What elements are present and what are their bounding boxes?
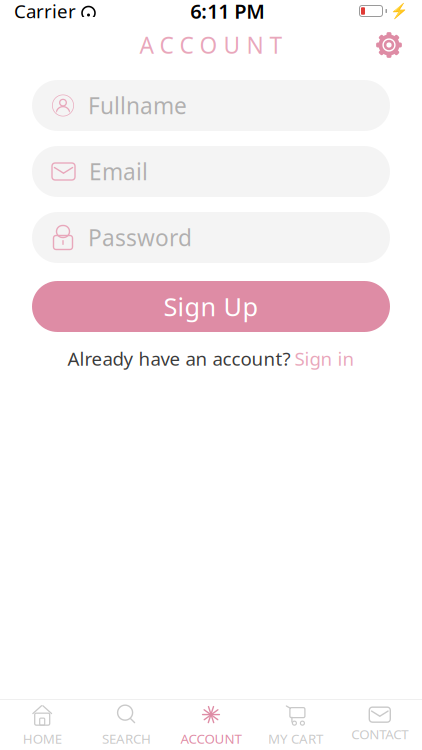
staticText: ACCOUNT: [180, 730, 241, 747]
button[interactable]: Email: [32, 146, 390, 197]
button[interactable]: CONTACT: [338, 701, 422, 749]
staticText: Sign in: [294, 346, 354, 371]
button[interactable]: Sign in: [294, 346, 354, 371]
staticText: Carrier: [14, 0, 76, 23]
button[interactable]: HOME: [0, 697, 84, 750]
button[interactable]: SEARCH: [84, 697, 169, 750]
staticText: 6:11 PM: [190, 0, 265, 24]
staticText: MY CART: [268, 730, 323, 747]
staticText: HOME: [23, 730, 62, 747]
button[interactable]: Sign Up: [32, 281, 390, 332]
staticText: CONTACT: [351, 725, 408, 743]
staticText: Already have an account?: [67, 346, 290, 371]
staticText: ⚡: [390, 3, 408, 19]
button[interactable]: ACCOUNT: [169, 697, 253, 750]
button[interactable]: Password: [32, 212, 390, 263]
staticText: SEARCH: [102, 730, 151, 747]
staticText: Password: [88, 222, 192, 252]
staticText: Sign Up: [163, 290, 258, 323]
button[interactable]: Fullname: [32, 80, 390, 131]
staticText: A C C O U N T: [139, 30, 282, 60]
button[interactable]: MY CART: [253, 697, 338, 750]
button[interactable]: Settings: [370, 26, 408, 64]
staticText: Fullname: [88, 90, 187, 120]
staticText: Email: [89, 156, 148, 186]
